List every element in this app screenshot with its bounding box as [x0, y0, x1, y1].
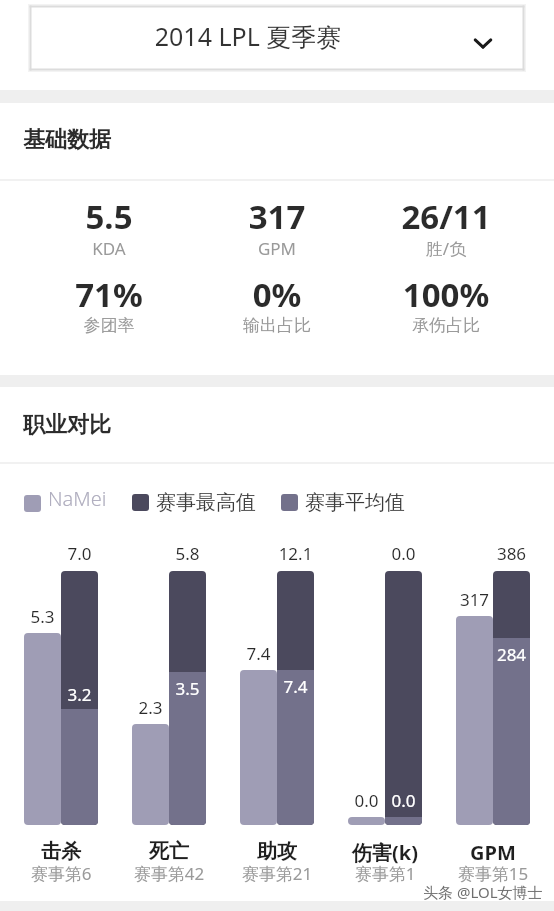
- staticText: 击杀: [4, 839, 118, 864]
- staticText: 2.3: [132, 696, 169, 719]
- staticText: 伤害(k): [328, 839, 442, 866]
- staticText: 头条 @LOL女博士: [423, 882, 543, 902]
- staticText: NaMei: [48, 485, 107, 512]
- staticText: GPM: [193, 237, 361, 260]
- staticText: 赛事最高值: [156, 490, 256, 515]
- staticText: 承伤占比: [362, 315, 530, 336]
- button[interactable]: 伤害(k): [348, 539, 422, 883]
- staticText: 7.4: [240, 642, 277, 665]
- staticText: 基础数据: [23, 126, 111, 154]
- staticText: 赛事第42: [112, 862, 226, 885]
- staticText: 284: [493, 643, 530, 666]
- staticText: 0%: [193, 272, 361, 317]
- staticText: 赛事平均值: [305, 490, 405, 515]
- button[interactable]: 2014 LPL 夏季赛: [28, 4, 526, 72]
- button[interactable]: 100%: [362, 272, 530, 344]
- staticText: 26/11: [362, 194, 530, 239]
- staticText: 2014 LPL 夏季赛: [30, 19, 466, 53]
- button[interactable]: NaMei: [24, 490, 107, 517]
- staticText: 317: [456, 588, 493, 611]
- button[interactable]: 助攻: [240, 539, 314, 883]
- button[interactable]: 0%: [193, 272, 361, 344]
- button[interactable]: 5.5: [25, 194, 193, 266]
- staticText: 3.2: [61, 683, 98, 706]
- staticText: 赛事第15: [436, 862, 550, 885]
- button[interactable]: 赛事最高值: [132, 490, 256, 515]
- staticText: 5.8: [169, 542, 206, 565]
- staticText: 0.0: [385, 789, 422, 812]
- button[interactable]: 展开选择赛季: [453, 4, 513, 72]
- staticText: 317: [193, 194, 361, 239]
- button[interactable]: 71%: [25, 272, 193, 344]
- staticText: 386: [493, 542, 530, 565]
- staticText: 5.5: [25, 194, 193, 239]
- button[interactable]: 赛事平均值: [281, 490, 405, 515]
- staticText: 参团率: [25, 315, 193, 336]
- staticText: 12.1: [277, 542, 314, 565]
- staticText: 职业对比: [23, 411, 111, 439]
- staticText: KDA: [25, 237, 193, 260]
- staticText: 0.0: [385, 542, 422, 565]
- staticText: 死亡: [112, 839, 226, 864]
- button[interactable]: 317: [193, 194, 361, 266]
- button[interactable]: 击杀: [24, 539, 98, 883]
- button[interactable]: 26/11: [362, 194, 530, 266]
- staticText: 助攻: [220, 839, 334, 864]
- staticText: 赛事第6: [4, 862, 118, 885]
- staticText: 3.5: [169, 677, 206, 700]
- staticText: 0.0: [348, 789, 385, 812]
- button[interactable]: GPM: [456, 539, 530, 883]
- staticText: GPM: [436, 839, 550, 866]
- staticText: 100%: [362, 272, 530, 317]
- staticText: 输出占比: [193, 315, 361, 336]
- staticText: 赛事第21: [220, 862, 334, 885]
- staticText: 5.3: [24, 605, 61, 628]
- staticText: 赛事第1: [328, 862, 442, 885]
- staticText: 71%: [25, 272, 193, 317]
- button[interactable]: 死亡: [132, 539, 206, 883]
- staticText: 胜/负: [362, 237, 530, 260]
- staticText: 7.4: [277, 675, 314, 698]
- staticText: 7.0: [61, 542, 98, 565]
